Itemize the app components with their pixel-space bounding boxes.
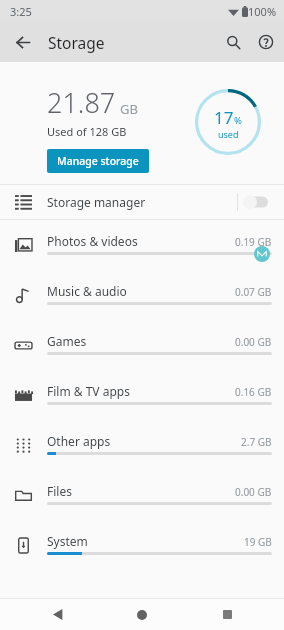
staticText: 0.19 GB bbox=[235, 235, 272, 249]
staticText: 21.87 bbox=[47, 84, 116, 121]
staticText: Used of 128 GB bbox=[47, 124, 127, 139]
staticText: 17 bbox=[214, 106, 234, 129]
staticText: 19 GB bbox=[244, 535, 272, 549]
button[interactable]: Photos & videos bbox=[0, 220, 284, 270]
staticText: 0.07 GB bbox=[235, 285, 272, 299]
button[interactable]: Home bbox=[115, 599, 169, 630]
staticText: 0.00 GB bbox=[235, 335, 272, 349]
button[interactable]: System bbox=[0, 520, 284, 570]
staticText: Manage storage bbox=[57, 154, 139, 168]
staticText: 100% bbox=[248, 4, 277, 19]
staticText: Photos & videos bbox=[47, 233, 138, 249]
staticText: System bbox=[47, 533, 88, 549]
button[interactable]: Film & TV apps bbox=[0, 370, 284, 420]
staticText: 0.16 GB bbox=[235, 385, 272, 399]
button[interactable]: Storage manager bbox=[0, 185, 284, 219]
staticText: Games bbox=[47, 333, 87, 349]
button[interactable]: Other apps bbox=[0, 420, 284, 470]
staticText: % bbox=[234, 114, 242, 127]
staticText: Files bbox=[47, 483, 72, 499]
button[interactable]: Files bbox=[0, 470, 284, 520]
button[interactable]: Music & audio bbox=[0, 270, 284, 320]
staticText: used bbox=[218, 128, 239, 140]
button[interactable]: Games bbox=[0, 320, 284, 370]
staticText: 2.7 GB bbox=[241, 435, 272, 449]
button[interactable]: Manage storage bbox=[47, 149, 149, 173]
staticText: Storage manager bbox=[47, 194, 146, 210]
staticText: Storage bbox=[48, 32, 105, 53]
button[interactable]: Help bbox=[249, 25, 283, 59]
button[interactable]: Back bbox=[31, 599, 85, 630]
button[interactable]: Search bbox=[216, 25, 250, 59]
staticText: Film & TV apps bbox=[47, 383, 130, 399]
staticText: 0.00 GB bbox=[235, 485, 272, 499]
staticText: Music & audio bbox=[47, 283, 127, 299]
staticText: 3:25 bbox=[10, 4, 32, 19]
staticText: Other apps bbox=[47, 433, 111, 449]
button[interactable]: Recent apps bbox=[200, 599, 254, 630]
button[interactable]: Back bbox=[6, 25, 40, 59]
staticText: GB bbox=[120, 100, 138, 118]
